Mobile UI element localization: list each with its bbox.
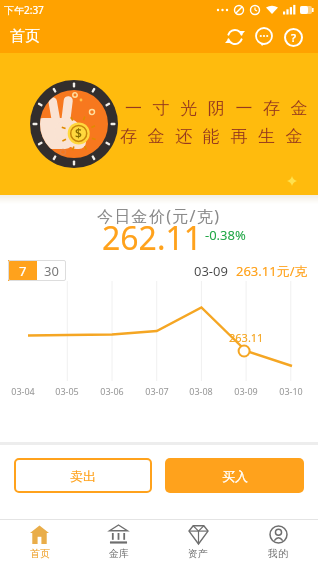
button[interactable]: 卖出: [14, 458, 152, 493]
staticText: 30: [44, 262, 59, 280]
staticText: 262.11: [102, 216, 203, 260]
staticText: 资产: [188, 547, 208, 560]
staticText: 03-08: [187, 385, 215, 397]
button[interactable]: 7: [8, 260, 37, 281]
button[interactable]: 首页: [0, 520, 79, 566]
button[interactable]: $: [0, 53, 318, 195]
staticText: 03-09: [232, 385, 260, 397]
staticText: 存金还能再生金: [120, 126, 314, 147]
staticText: -0.38%: [205, 226, 246, 244]
staticText: 263.11: [229, 330, 264, 345]
staticText: 03-10: [277, 385, 305, 397]
staticText: 7: [19, 262, 27, 280]
staticText: 03-07: [143, 385, 171, 397]
staticText: 金库: [109, 547, 129, 560]
staticText: 一寸光阴一存金: [125, 98, 318, 119]
button[interactable]: 资产: [158, 520, 238, 566]
staticText: 03-05: [53, 385, 81, 397]
staticText: 03-06: [98, 385, 126, 397]
staticText: ?: [291, 30, 297, 45]
staticText: 我的: [268, 547, 288, 560]
staticText: 下午2:37: [4, 3, 44, 17]
staticText: 卖出: [70, 468, 96, 484]
button[interactable]: ?: [282, 26, 304, 48]
staticText: 买入: [222, 468, 248, 484]
staticText: $: [75, 125, 82, 141]
staticText: 今日金价(元/克): [97, 205, 221, 227]
staticText: 首页: [30, 547, 50, 560]
button[interactable]: 买入: [165, 458, 304, 493]
button[interactable]: 30: [37, 260, 66, 281]
button[interactable]: [253, 26, 275, 48]
button[interactable]: 金库: [79, 520, 158, 566]
staticText: 03-04: [9, 385, 37, 397]
button[interactable]: 我的: [238, 520, 318, 566]
staticText: 03-09: [194, 262, 228, 280]
button[interactable]: [224, 26, 246, 48]
staticText: 首页: [10, 27, 40, 46]
staticText: 263.11元/克: [236, 262, 308, 280]
